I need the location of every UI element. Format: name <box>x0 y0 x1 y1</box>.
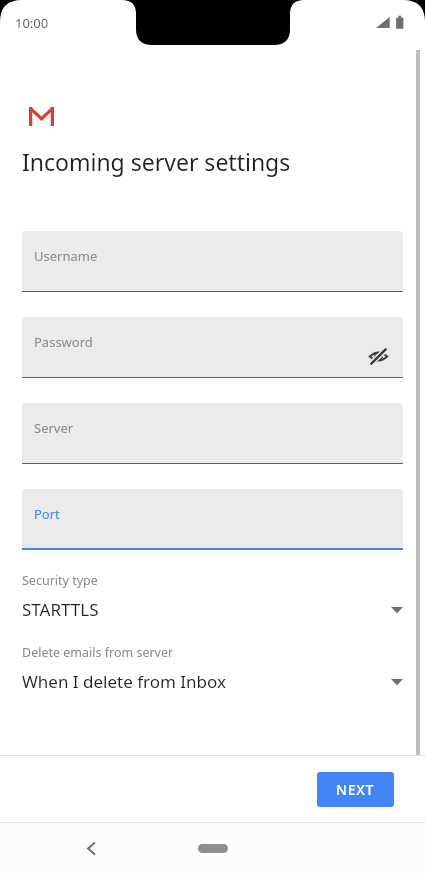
staticText: STARTTLS <box>22 598 99 621</box>
button[interactable]: Server <box>22 403 403 464</box>
button[interactable]: Show password <box>365 343 391 369</box>
staticText: Delete emails from server <box>22 644 174 661</box>
staticText: Incoming server settings <box>22 146 291 177</box>
staticText: Password <box>34 333 93 351</box>
button[interactable]: Security type <box>0 572 425 621</box>
staticText: 10:00 <box>15 14 49 32</box>
staticText: NEXT <box>336 780 375 799</box>
button[interactable]: NEXT <box>317 772 394 807</box>
button[interactable]: Username <box>22 231 403 292</box>
button[interactable]: Delete emails from server <box>0 644 425 693</box>
staticText: Username <box>34 247 98 265</box>
staticText: Security type <box>22 572 98 589</box>
staticText: Port <box>34 505 60 523</box>
button[interactable]: Port <box>22 489 403 550</box>
button[interactable]: Back <box>74 831 108 865</box>
button[interactable]: Home <box>190 836 236 860</box>
button[interactable]: Password <box>22 317 403 378</box>
staticText: Server <box>34 419 74 437</box>
staticText: When I delete from Inbox <box>22 670 226 693</box>
